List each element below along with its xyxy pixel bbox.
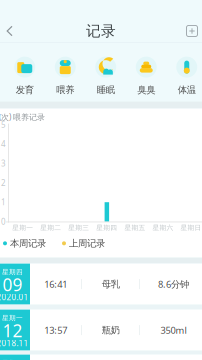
staticText: 母乳 (102, 278, 120, 290)
button[interactable]: 发育 (4, 57, 45, 96)
staticText: 13:57 (44, 324, 67, 336)
button[interactable]: 星期四 (0, 264, 202, 305)
button[interactable]: 体温 (166, 57, 202, 96)
staticText: 2 (1, 177, 6, 188)
staticText: 2020.01 (0, 292, 28, 302)
staticText: 星期三 (68, 224, 89, 232)
staticText: 瓶奶 (102, 324, 120, 336)
staticText: 星期一 (12, 224, 33, 232)
staticText: 3 (1, 158, 6, 169)
staticText: 2018.11 (0, 338, 28, 348)
staticText: 星期日 (180, 224, 201, 232)
button[interactable]: 睡眠 (85, 57, 126, 96)
staticText: 记录 (86, 22, 116, 40)
staticText: 臭臭 (137, 84, 155, 96)
button[interactable]: 星期一 (0, 310, 202, 351)
staticText: 本周记录 (10, 238, 46, 249)
staticText: 0 (1, 216, 6, 227)
staticText: (次) 喂养记录 (0, 112, 45, 122)
staticText: 星期一 (2, 314, 23, 322)
staticText: 体温 (178, 84, 196, 96)
staticText: 星期二 (40, 224, 61, 232)
staticText: 星期三 (2, 359, 23, 360)
staticText: 1 (1, 197, 6, 207)
staticText: 350ml (160, 324, 186, 336)
staticText: 发育 (16, 84, 34, 96)
staticText: 上周记录 (69, 238, 105, 249)
staticText: 12 (2, 319, 22, 342)
button[interactable]: 星期三 (0, 355, 202, 360)
staticText: 星期四 (96, 224, 117, 232)
button[interactable]: 臭臭 (126, 57, 166, 96)
staticText: 星期五 (124, 224, 145, 232)
staticText: 09 (2, 273, 22, 296)
staticText: 星期四 (2, 268, 23, 276)
staticText: 5 (1, 119, 6, 130)
staticText: 喂养 (56, 84, 74, 96)
staticText: 睡眠 (97, 84, 115, 96)
staticText: 星期六 (152, 224, 173, 232)
button[interactable]: 喂养 (45, 57, 85, 96)
staticText: 8.6分钟 (158, 278, 189, 290)
staticText: 16:41 (44, 278, 67, 290)
staticText: 4 (1, 139, 6, 149)
button[interactable]: Back (0, 20, 25, 42)
button[interactable]: Add record (177, 20, 202, 42)
